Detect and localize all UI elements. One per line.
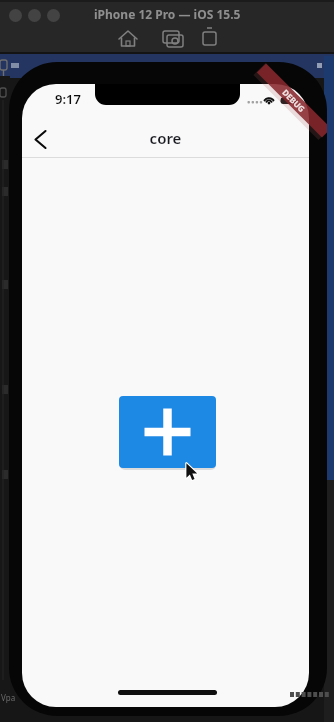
staticText: core: [22, 128, 309, 148]
staticText: Vpa: [1, 692, 16, 703]
staticText: iPhone 12 Pro — iOS 15.5: [94, 6, 241, 22]
staticText: DEBUG: [280, 87, 308, 114]
button[interactable]: [28, 124, 58, 154]
staticText: 9:17: [55, 90, 81, 108]
button[interactable]: [119, 396, 216, 468]
